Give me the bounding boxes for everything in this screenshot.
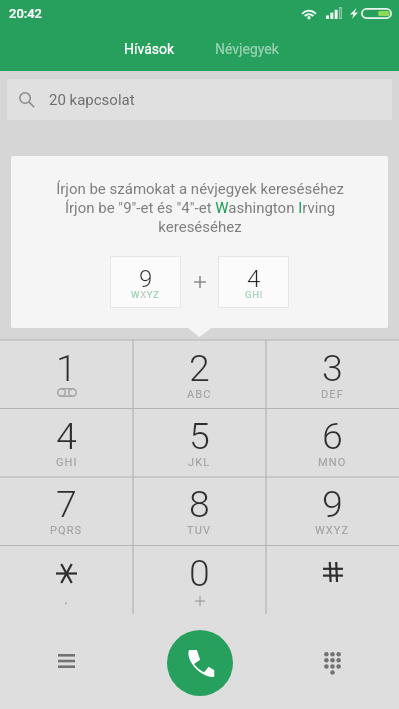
button[interactable]: 9 <box>110 256 181 308</box>
button[interactable] <box>266 545 399 614</box>
staticText: 6 <box>322 414 343 458</box>
button[interactable]: 0 <box>133 545 266 614</box>
button[interactable]: 5 <box>133 408 266 476</box>
staticText: Írjon be számokat a névjegyek kereséséhe… <box>56 180 344 236</box>
staticText: 7 <box>56 482 77 526</box>
staticText: 4 <box>247 265 261 293</box>
other: Wi-Fi <box>301 7 317 20</box>
staticText: , <box>65 593 69 606</box>
staticText: 9 <box>139 265 153 293</box>
staticText: 20 kapcsolat <box>49 91 135 109</box>
staticText: 2 <box>189 346 210 390</box>
button[interactable]: 3 <box>266 340 399 408</box>
button[interactable]: Dialpad <box>266 614 399 709</box>
other: Battery <box>361 8 392 19</box>
button[interactable]: 2 <box>133 340 266 408</box>
staticText: PQRS <box>50 524 83 537</box>
button[interactable]: Search <box>7 79 392 120</box>
staticText: Névjegyek <box>215 41 279 57</box>
staticText: WXYZ <box>131 289 160 300</box>
button[interactable]: 6 <box>266 408 399 476</box>
button[interactable]: 4 <box>0 408 133 476</box>
staticText: JKL <box>188 456 211 469</box>
staticText: 3 <box>322 346 343 390</box>
staticText: GHI <box>56 456 78 469</box>
button[interactable]: , <box>0 545 133 614</box>
button[interactable]: Hívások <box>104 30 195 68</box>
button[interactable]: 1 <box>0 340 133 408</box>
staticText: TUV <box>187 524 212 537</box>
other: Search <box>19 92 35 108</box>
other: Signal <box>326 7 342 19</box>
staticText: 5 <box>189 414 210 458</box>
button[interactable]: 4 <box>218 256 289 308</box>
button[interactable]: Névjegyek <box>195 30 299 68</box>
staticText: GHI <box>245 289 263 300</box>
button[interactable]: 8 <box>133 476 266 545</box>
staticText: 20:42 <box>9 6 43 21</box>
staticText: 1 <box>56 346 77 390</box>
staticText: DEF <box>321 388 344 401</box>
staticText: Hívások <box>124 41 175 57</box>
staticText: 4 <box>56 414 77 458</box>
staticText: 8 <box>189 482 210 526</box>
staticText: 0 <box>189 551 210 595</box>
staticText: WXYZ <box>315 524 350 537</box>
staticText: MNO <box>318 456 347 469</box>
staticText: 9 <box>322 482 343 526</box>
button[interactable]: 9 <box>266 476 399 545</box>
button[interactable]: Call log <box>0 614 133 709</box>
staticText: ABC <box>187 388 212 401</box>
button[interactable]: Call <box>167 630 233 696</box>
button[interactable]: 7 <box>0 476 133 545</box>
